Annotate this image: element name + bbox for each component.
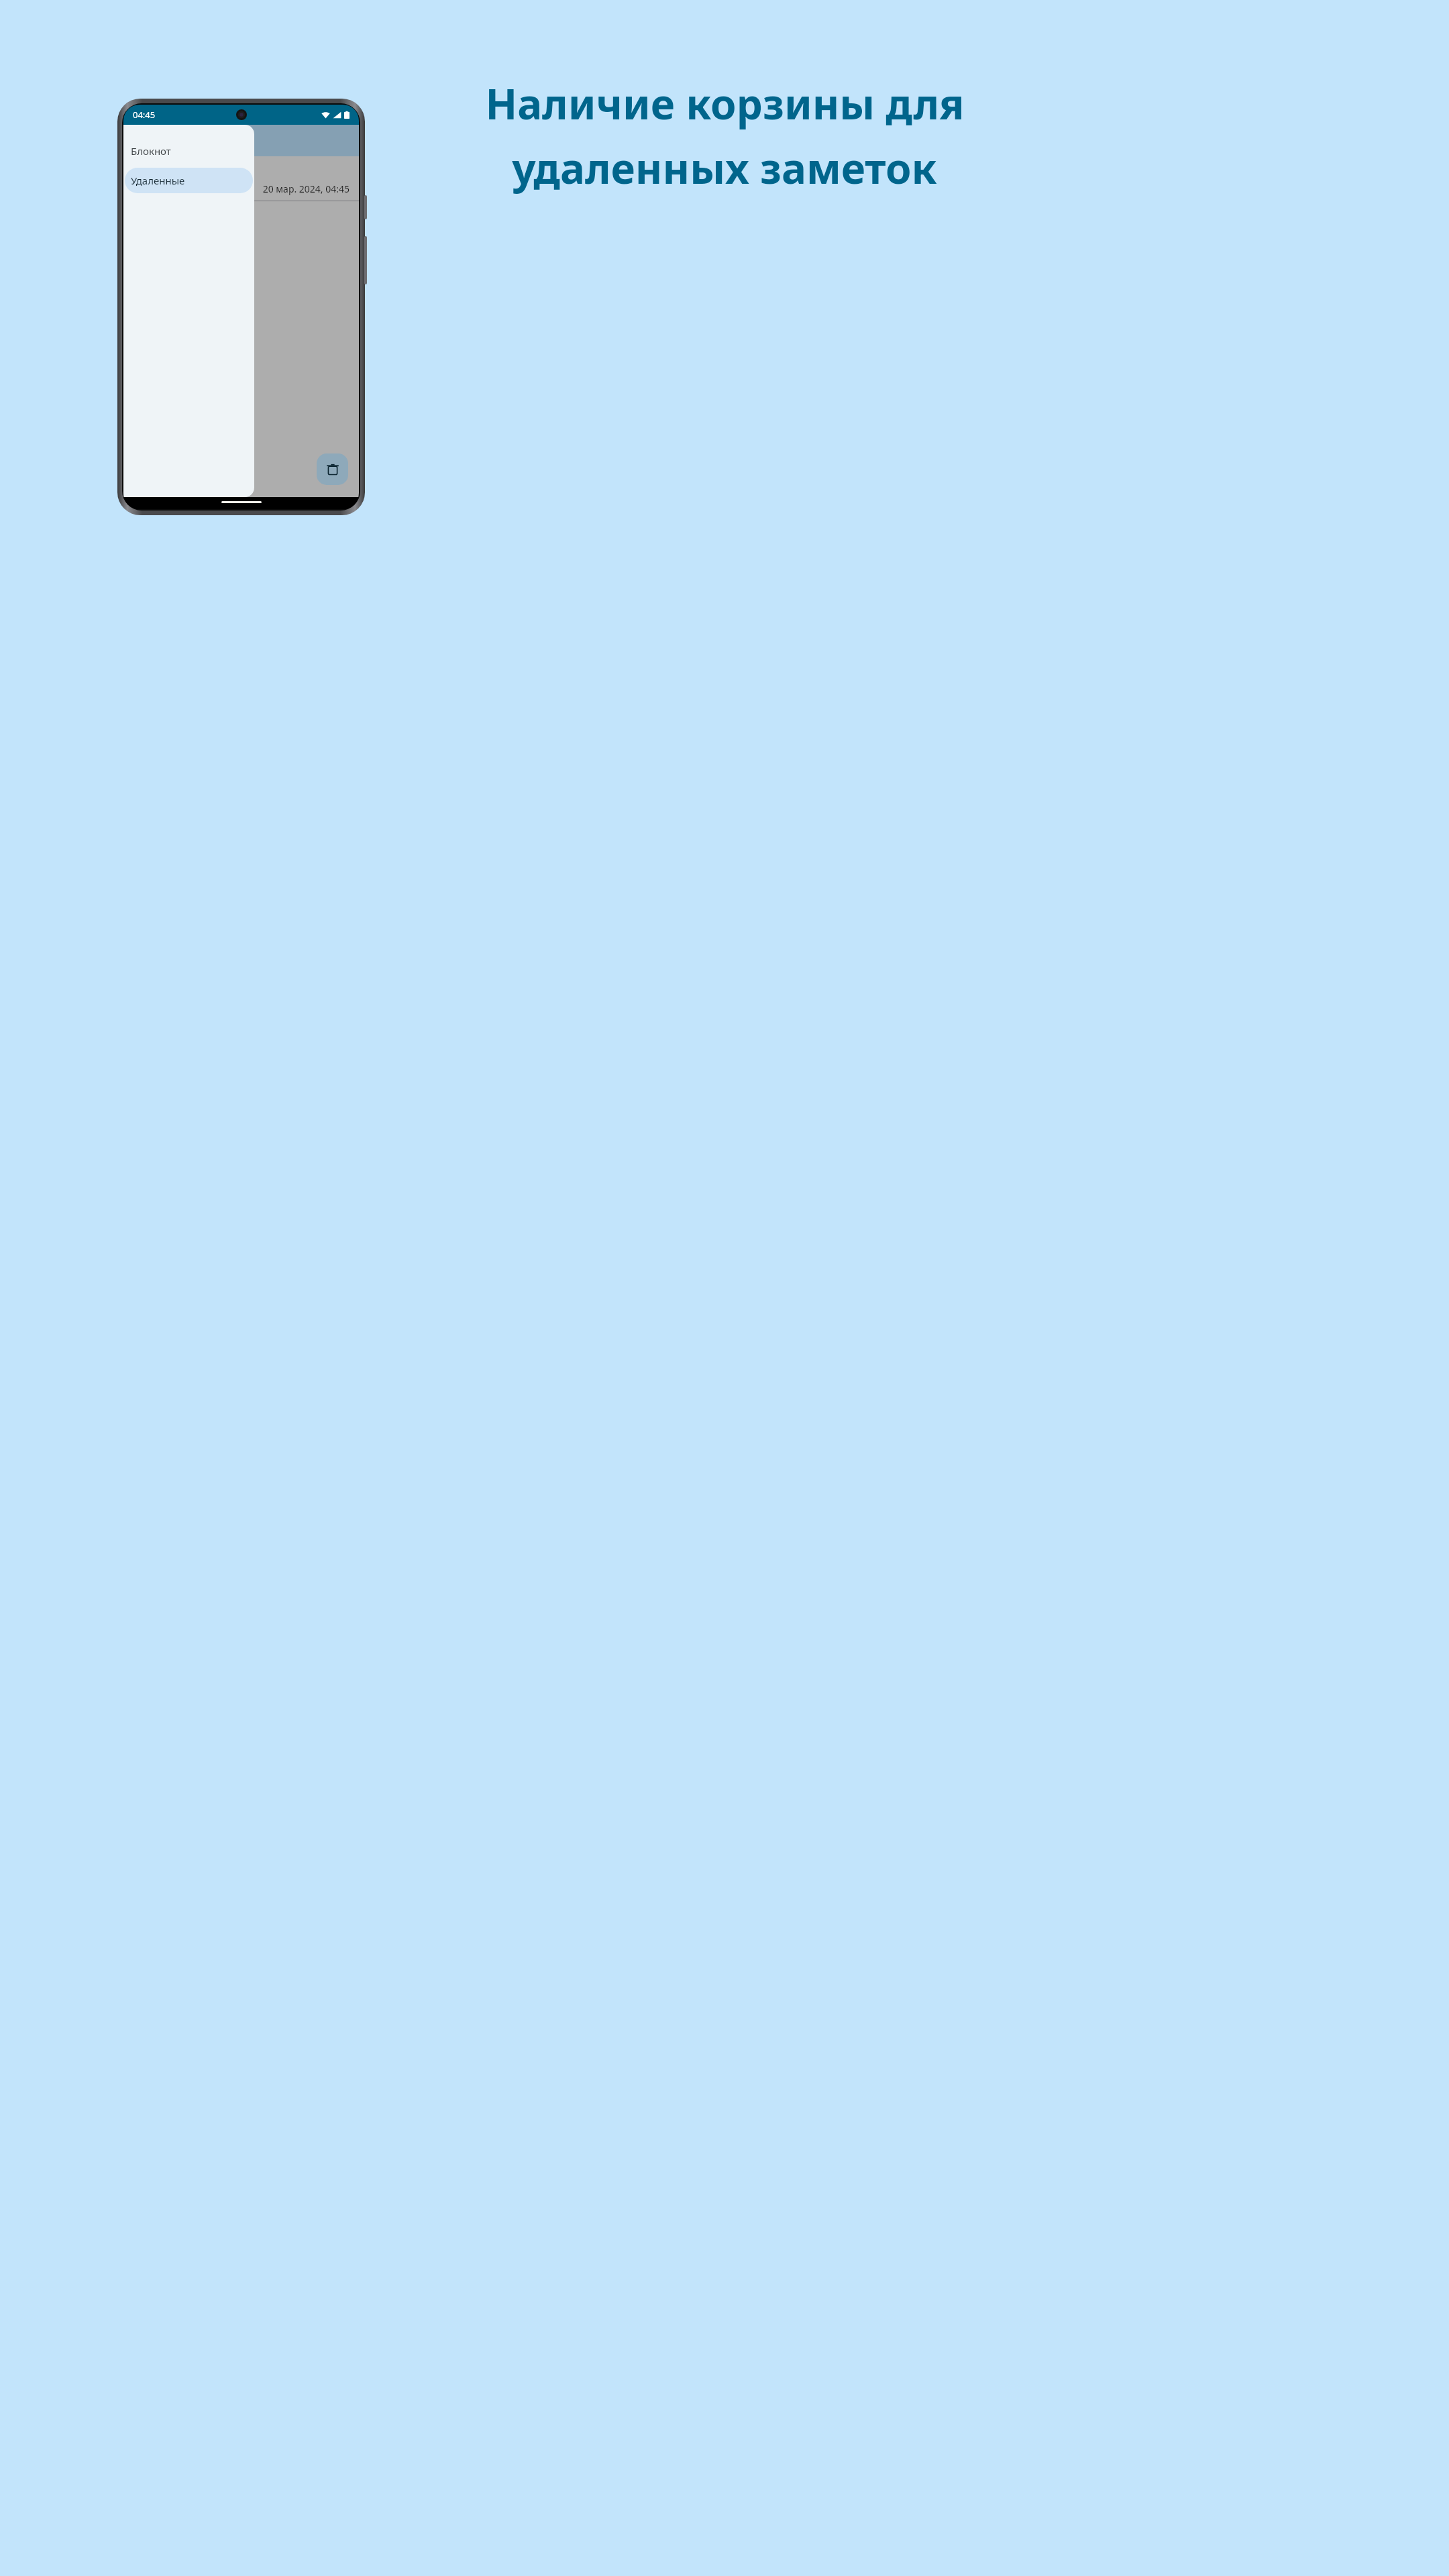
staticText: Наличие корзины для bbox=[485, 75, 965, 131]
button[interactable]: Удаленные bbox=[125, 168, 253, 193]
staticText: Мысль дня: bbox=[133, 160, 197, 176]
staticText: удаленных заметок bbox=[512, 140, 937, 196]
staticText: 20 мар. 2024, 04:45 bbox=[123, 182, 350, 195]
button[interactable]: Удалить bbox=[317, 453, 348, 485]
button[interactable]: Блокнот bbox=[125, 138, 253, 164]
staticText: Блокнот bbox=[131, 144, 171, 158]
staticText: 04:45 bbox=[133, 109, 156, 121]
staticText: Удаленные bbox=[131, 174, 185, 187]
